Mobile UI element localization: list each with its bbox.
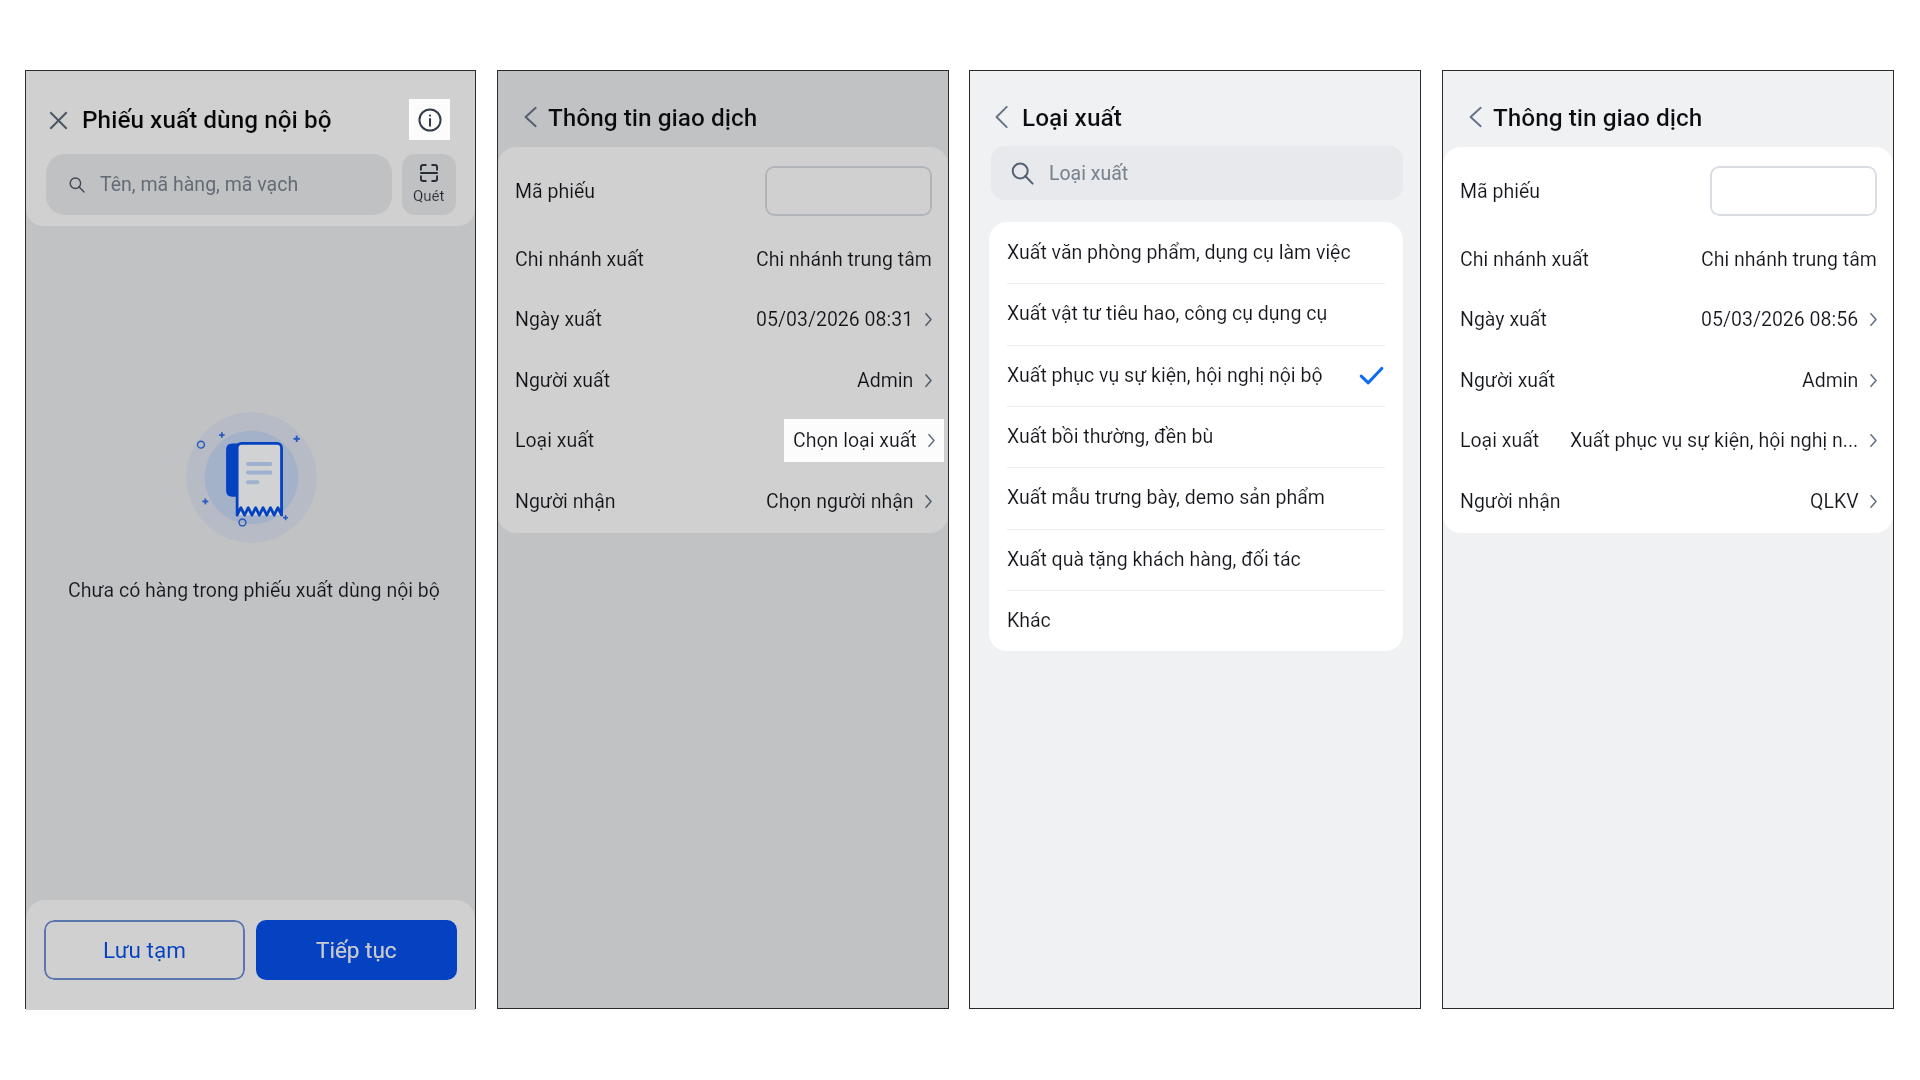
button[interactable]: Người nhận bbox=[1443, 471, 1893, 532]
button[interactable]: Ngày xuất bbox=[1443, 289, 1893, 350]
staticText: Xuất mẫu trưng bày, demo sản phẩm bbox=[1007, 486, 1325, 509]
staticText: Xuất phục vụ sự kiện, hội nghị nội bộ bbox=[1007, 364, 1323, 387]
button[interactable]: Xuất quà tặng khách hàng, đối tác bbox=[989, 529, 1403, 590]
staticText: Chọn người nhận bbox=[766, 490, 914, 513]
button[interactable]: Xuất mẫu trưng bày, demo sản phẩm bbox=[989, 467, 1403, 528]
staticText: Loại xuất bbox=[515, 429, 595, 452]
staticText: Người nhận bbox=[515, 490, 616, 513]
button[interactable]: Tên, mã hàng, mã vạch bbox=[46, 154, 392, 215]
staticText: Chi nhánh trung tâm bbox=[756, 248, 932, 271]
staticText: Khác bbox=[1007, 609, 1051, 632]
button[interactable]: Xuất phục vụ sự kiện, hội nghị nội bộ bbox=[989, 345, 1403, 406]
button[interactable]: Loại xuất bbox=[498, 410, 948, 471]
button[interactable]: Scan barcode bbox=[402, 154, 456, 215]
button[interactable]: Mã phiếu bbox=[498, 153, 948, 229]
staticText: Người xuất bbox=[1460, 369, 1556, 392]
staticText: Chi nhánh xuất bbox=[515, 248, 644, 271]
staticText: QLKV bbox=[1810, 490, 1859, 513]
staticText: Phiếu xuất dùng nội bộ bbox=[82, 105, 332, 134]
staticText: Quét bbox=[413, 187, 445, 205]
button[interactable]: Mã phiếu bbox=[1710, 166, 1877, 216]
staticText: Ngày xuất bbox=[1460, 308, 1547, 331]
button[interactable]: Back bbox=[518, 105, 542, 129]
staticText: 05/03/2026 08:56 bbox=[1701, 308, 1859, 331]
staticText: Mã phiếu bbox=[1460, 180, 1540, 203]
staticText: Admin bbox=[1802, 369, 1859, 392]
button[interactable]: Ngày xuất bbox=[498, 289, 948, 350]
staticText: Thông tin giao dịch bbox=[548, 103, 758, 132]
button[interactable]: Xuất bồi thường, đền bù bbox=[989, 406, 1403, 467]
staticText: Xuất quà tặng khách hàng, đối tác bbox=[1007, 548, 1301, 571]
staticText: Loại xuất bbox=[1049, 162, 1129, 185]
staticText: Xuất văn phòng phẩm, dụng cụ làm việc bbox=[1007, 241, 1351, 264]
staticText: Lưu tạm bbox=[103, 937, 186, 963]
button[interactable]: Lưu tạm bbox=[44, 920, 245, 980]
staticText: Tên, mã hàng, mã vạch bbox=[100, 173, 299, 196]
staticText: Chưa có hàng trong phiếu xuất dùng nội b… bbox=[68, 579, 440, 602]
staticText: Chi nhánh trung tâm bbox=[1701, 248, 1877, 271]
button[interactable]: Mã phiếu bbox=[1443, 153, 1893, 229]
staticText: Chi nhánh xuất bbox=[1460, 248, 1589, 271]
button[interactable]: Mã phiếu bbox=[765, 166, 932, 216]
staticText: Xuất phục vụ sự kiện, hội nghị n... bbox=[1570, 429, 1859, 452]
button[interactable]: Người xuất bbox=[498, 350, 948, 411]
staticText: Xuất vật tư tiêu hao, công cụ dụng cụ bbox=[1007, 302, 1328, 325]
button[interactable]: Xuất văn phòng phẩm, dụng cụ làm việc bbox=[989, 222, 1403, 283]
button[interactable]: Loại xuất bbox=[1443, 410, 1893, 471]
button[interactable]: Khác bbox=[989, 590, 1403, 651]
staticText: Loại xuất bbox=[1022, 103, 1122, 132]
staticText: Loại xuất bbox=[1460, 429, 1540, 452]
staticText: Người xuất bbox=[515, 369, 611, 392]
staticText: Tiếp tục bbox=[316, 937, 397, 963]
staticText: Người nhận bbox=[1460, 490, 1561, 513]
button[interactable]: Tiếp tục bbox=[256, 920, 457, 980]
button[interactable]: Chi nhánh xuất bbox=[498, 229, 948, 290]
staticText: Admin bbox=[857, 369, 914, 392]
button[interactable]: Chi nhánh xuất bbox=[1443, 229, 1893, 290]
button[interactable]: Xuất vật tư tiêu hao, công cụ dụng cụ bbox=[989, 283, 1403, 344]
staticText: Thông tin giao dịch bbox=[1493, 103, 1703, 132]
staticText: 05/03/2026 08:31 bbox=[756, 308, 914, 331]
button[interactable]: Người xuất bbox=[1443, 350, 1893, 411]
button[interactable]: Close bbox=[47, 109, 69, 131]
staticText: Xuất bồi thường, đền bù bbox=[1007, 425, 1214, 448]
staticText: Chọn loại xuất bbox=[793, 429, 917, 452]
button[interactable]: Back bbox=[989, 105, 1013, 129]
button[interactable]: Information bbox=[409, 99, 450, 140]
staticText: Ngày xuất bbox=[515, 308, 602, 331]
button[interactable]: Back bbox=[1463, 105, 1487, 129]
staticText: Mã phiếu bbox=[515, 180, 595, 203]
button[interactable]: Người nhận bbox=[498, 471, 948, 532]
button[interactable]: Loại xuất bbox=[991, 146, 1403, 200]
